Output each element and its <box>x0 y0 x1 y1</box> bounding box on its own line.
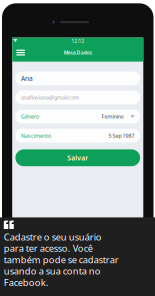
button[interactable]: Menu <box>12 45 29 60</box>
staticText: 5 Sep 1987 <box>109 132 135 139</box>
staticText: Ana <box>21 74 33 83</box>
button[interactable]: Gênero <box>15 110 140 123</box>
staticText: Cadastre o seu usuário para ter acesso. … <box>4 231 119 289</box>
staticText: anaflaviana@gmail.com <box>21 94 79 101</box>
staticText: Meus Dados <box>64 49 92 56</box>
staticText: Gênero <box>21 113 39 120</box>
staticText: Nascimento <box>21 132 51 139</box>
staticText: Feminino <box>101 113 123 120</box>
button[interactable]: Salvar <box>15 149 140 166</box>
button[interactable]: Nascimento <box>15 129 140 142</box>
staticText: 12:12 <box>71 37 84 44</box>
staticText: Salvar <box>67 153 88 162</box>
